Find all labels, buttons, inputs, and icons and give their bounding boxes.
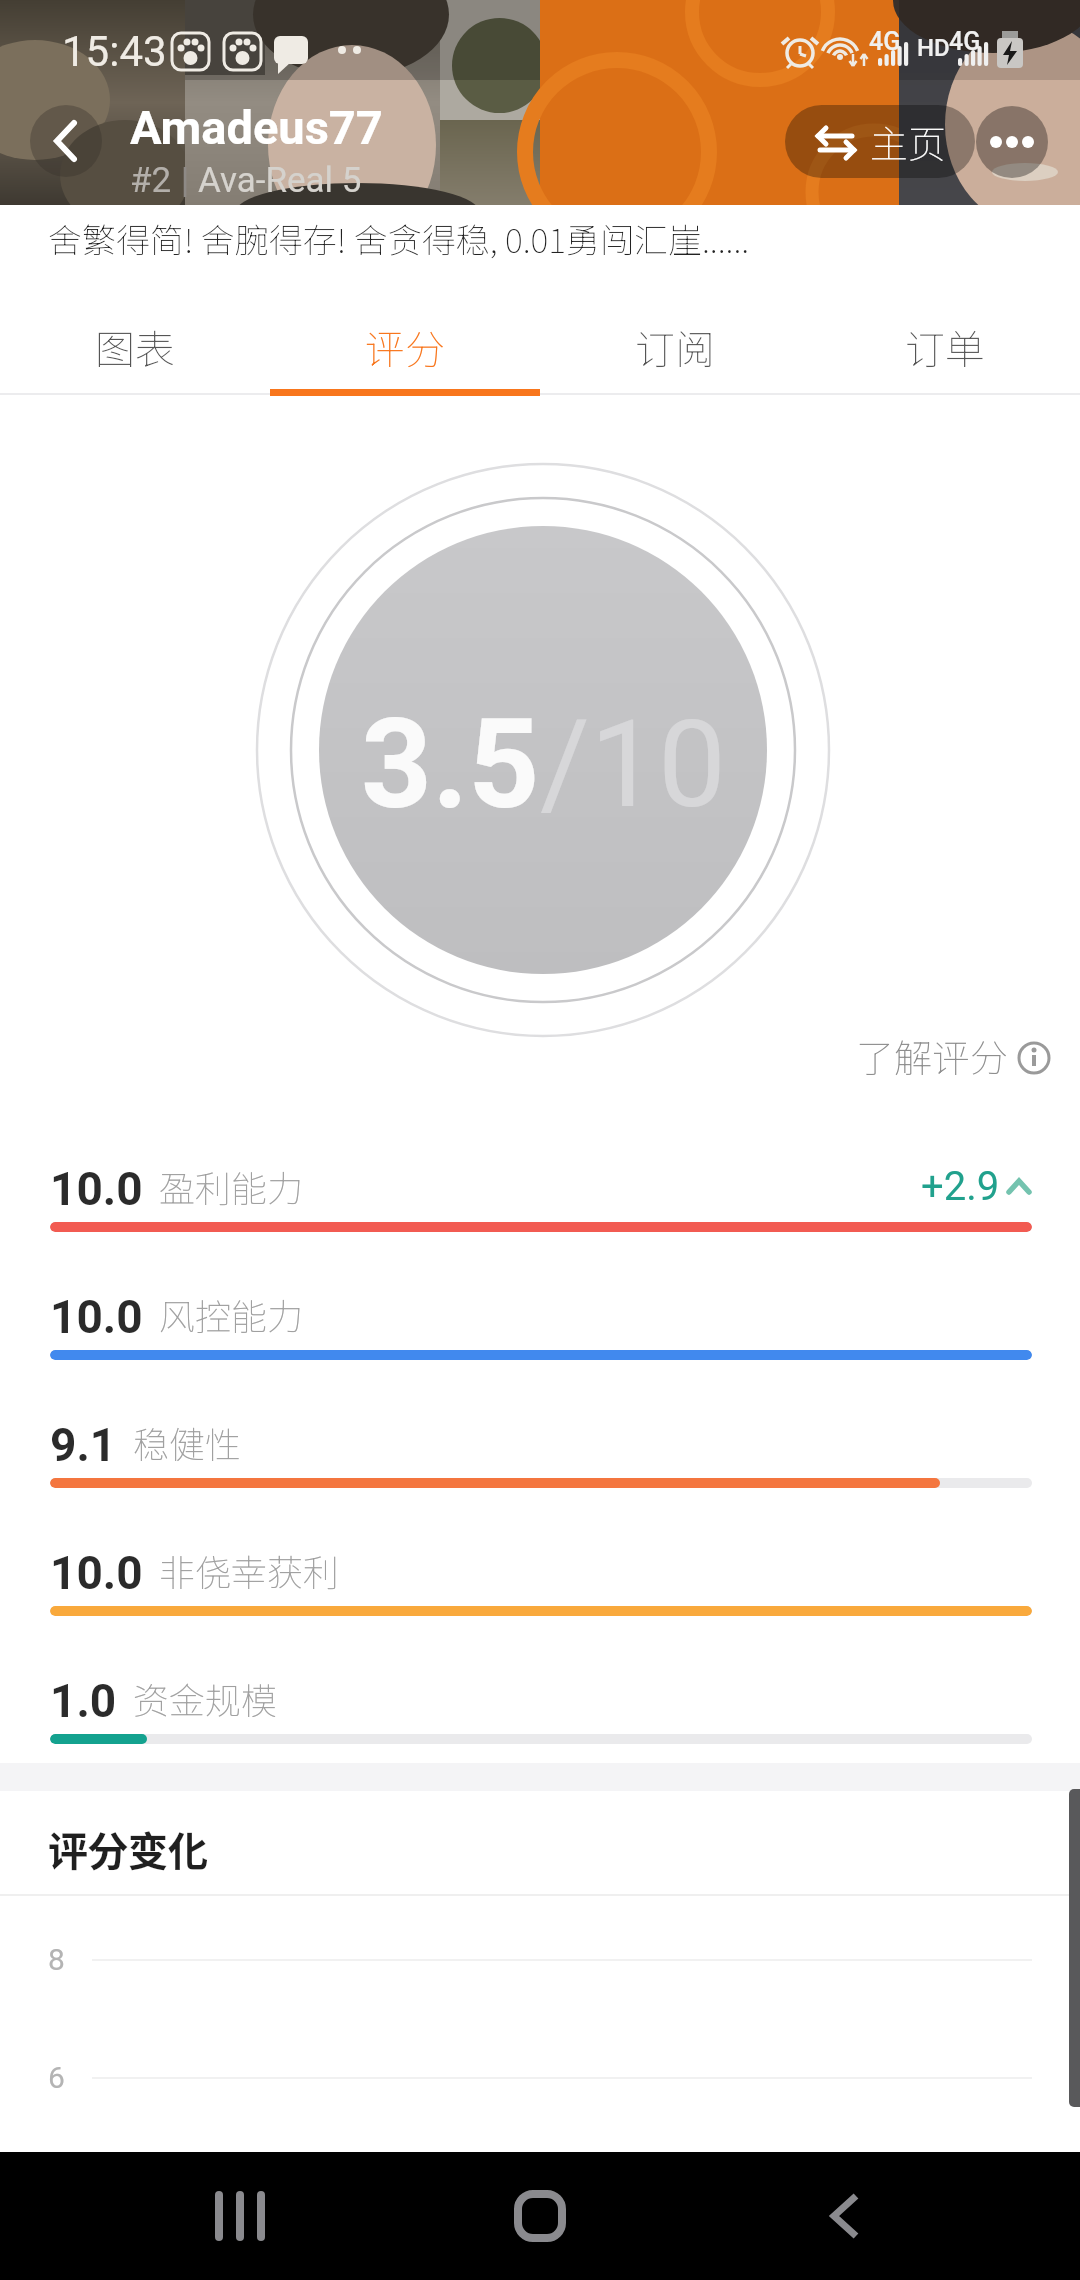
button[interactable]: 主页	[785, 105, 975, 178]
staticText: 了解评分	[856, 1028, 1009, 1083]
staticText: 图表	[95, 318, 175, 376]
staticText: 1.0	[50, 1674, 117, 1728]
button[interactable]	[30, 105, 102, 177]
button[interactable]: 了解评分	[856, 1028, 1051, 1083]
staticText: 稳健性	[133, 1416, 242, 1468]
staticText: 4G	[869, 27, 901, 56]
staticText: 风控能力	[159, 1288, 304, 1340]
staticText: 10.0	[50, 1546, 143, 1600]
button[interactable]	[190, 2152, 290, 2280]
button[interactable]: 图表	[0, 303, 270, 391]
staticText: #2	[130, 160, 172, 201]
staticText: 4G	[949, 27, 981, 56]
staticText: 评分	[365, 318, 445, 376]
staticText: 3.5	[361, 692, 540, 837]
staticText: 非侥幸获利	[159, 1544, 340, 1596]
staticText: 舍繁得简! 舍腕得存! 舍贪得稳, 0.01勇闯汇崖......	[48, 214, 750, 263]
staticText: 6	[48, 2060, 65, 2095]
staticText: 评分变化	[48, 1820, 208, 1878]
staticText: 主页	[870, 114, 947, 169]
staticText: Amadeus77	[130, 100, 383, 155]
staticText: 10.0	[50, 1162, 143, 1216]
staticText: 订单	[905, 318, 985, 376]
staticText: +2.9	[921, 1163, 1000, 1210]
staticText: |	[172, 160, 198, 201]
button[interactable]	[490, 2152, 590, 2280]
staticText: 订阅	[635, 318, 715, 376]
button[interactable]: 评分	[270, 303, 540, 391]
staticText: 9.1	[50, 1418, 117, 1472]
button[interactable]	[795, 2152, 895, 2280]
button[interactable]: 订阅	[540, 303, 810, 391]
staticText: 10.0	[50, 1290, 143, 1344]
staticText: 盈利能力	[159, 1160, 304, 1212]
button[interactable]: 订单	[810, 303, 1080, 391]
staticText: 8	[48, 1942, 65, 1977]
staticText: 15:43	[62, 27, 167, 76]
staticText: Ava-Real 5	[198, 160, 362, 201]
button[interactable]	[976, 106, 1048, 178]
staticText: HD	[917, 34, 950, 62]
staticText: /10	[540, 694, 726, 836]
staticText: 资金规模	[133, 1672, 278, 1724]
